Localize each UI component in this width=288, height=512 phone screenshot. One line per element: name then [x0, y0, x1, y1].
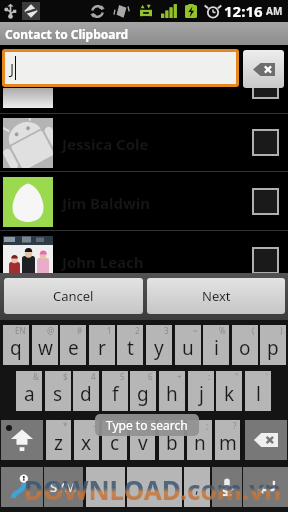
staticText: John Leach: [62, 252, 144, 272]
staticText: $: [63, 371, 68, 382]
staticText: ': [266, 371, 268, 382]
staticText: v: [138, 430, 148, 456]
staticText: w: [38, 335, 53, 361]
button[interactable]: :: [188, 371, 214, 411]
button[interactable]: ,: [184, 467, 210, 507]
staticText: z: [54, 430, 63, 456]
staticText: @: [47, 325, 55, 336]
staticText: t: [127, 335, 134, 361]
button[interactable]: ": [216, 371, 242, 411]
button[interactable]: ?: [130, 420, 155, 460]
button[interactable]: Next: [147, 278, 285, 314]
button[interactable]: -: [74, 420, 99, 460]
button[interactable]: Input method: [1, 467, 43, 507]
staticText: &: [33, 371, 39, 382]
button[interactable]: ~: [175, 325, 201, 365]
staticText: DOWNLOAD.com.vn: [24, 472, 282, 507]
staticText: Jim Baldwin: [62, 193, 150, 213]
staticText: q: [10, 335, 22, 361]
button[interactable]: 2: [117, 325, 143, 365]
staticText: 5: [120, 371, 125, 382]
button[interactable]: Enter: [243, 467, 288, 507]
button[interactable]: *: [46, 420, 71, 460]
staticText: e: [68, 335, 79, 361]
button[interactable]: +: [159, 371, 185, 411]
staticText: -: [93, 420, 96, 431]
staticText: ~: [193, 325, 198, 336]
staticText: u: [182, 335, 194, 361]
staticText: ?: [148, 420, 152, 431]
staticText: #: [77, 325, 83, 336]
staticText: ,: [195, 478, 199, 497]
button[interactable]: ): [260, 325, 286, 365]
button[interactable]: Jessica Cole: [0, 117, 288, 171]
staticText: ;: [206, 420, 209, 431]
button[interactable]: /: [159, 420, 184, 460]
staticText: 2: [135, 325, 140, 336]
staticText: f: [112, 381, 119, 407]
staticText: o: [239, 335, 251, 361]
staticText: y: [154, 335, 164, 361]
button[interactable]: !: [102, 420, 127, 460]
button[interactable]: 4: [73, 371, 99, 411]
button[interactable]: Cancel: [4, 278, 143, 314]
button[interactable]: 1: [89, 325, 115, 365]
staticText: ): [280, 325, 283, 336]
staticText: r: [98, 335, 106, 361]
staticText: *: [63, 420, 68, 431]
staticText: SYM: [50, 478, 77, 496]
button[interactable]: &: [16, 371, 42, 411]
staticText: x: [81, 430, 92, 456]
staticText: c: [110, 430, 120, 456]
button[interactable]: @: [32, 325, 58, 365]
staticText: p: [267, 335, 279, 361]
staticText: AM: [266, 4, 283, 18]
staticText: k: [224, 381, 235, 407]
button[interactable]: John Leach: [0, 235, 288, 273]
staticText: 4: [91, 371, 96, 382]
staticText: b: [166, 430, 178, 456]
button[interactable]: EN: [3, 325, 29, 365]
staticText: n: [194, 430, 206, 456]
staticText: J: [10, 58, 15, 78]
staticText: %: [219, 325, 226, 336]
staticText: 12:16: [224, 1, 263, 21]
staticText: EN: [15, 325, 26, 336]
staticText: +: [177, 371, 182, 382]
button[interactable]: (: [232, 325, 258, 365]
button[interactable]: ?: [215, 420, 240, 460]
staticText: (: [252, 325, 255, 336]
staticText: /: [178, 420, 181, 431]
staticText: Next: [202, 287, 231, 305]
button[interactable]: [127, 467, 182, 507]
staticText: Cancel: [53, 287, 94, 305]
button[interactable]: 5: [102, 371, 128, 411]
button[interactable]: $: [45, 371, 71, 411]
button[interactable]: 6: [130, 371, 156, 411]
button[interactable]: Shift: [1, 420, 43, 460]
staticText: d: [80, 381, 92, 407]
button[interactable]: 3: [146, 325, 172, 365]
button[interactable]: #: [60, 325, 86, 365]
button[interactable]: Delete: [245, 420, 287, 460]
button[interactable]: J: [5, 52, 236, 84]
button[interactable]: SYM: [44, 467, 83, 507]
button[interactable]: Backspace: [243, 50, 284, 88]
staticText: ": [235, 371, 239, 382]
staticText: l: [256, 381, 261, 407]
button[interactable]: Voice input: [212, 467, 242, 507]
button[interactable]: Jim Baldwin: [0, 176, 288, 230]
staticText: i: [214, 335, 219, 361]
staticText: m: [219, 430, 237, 456]
button[interactable]: ;: [187, 420, 212, 460]
button[interactable]: %: [203, 325, 229, 365]
button[interactable]: [86, 467, 125, 507]
staticText: Jessica Cole: [62, 134, 149, 154]
staticText: 6: [148, 371, 153, 382]
staticText: h: [166, 381, 178, 407]
button[interactable]: ': [245, 371, 271, 411]
staticText: 3: [164, 325, 169, 336]
staticText: j: [199, 381, 204, 407]
staticText: s: [53, 381, 63, 407]
staticText: Contact to Clipboard: [5, 26, 129, 42]
